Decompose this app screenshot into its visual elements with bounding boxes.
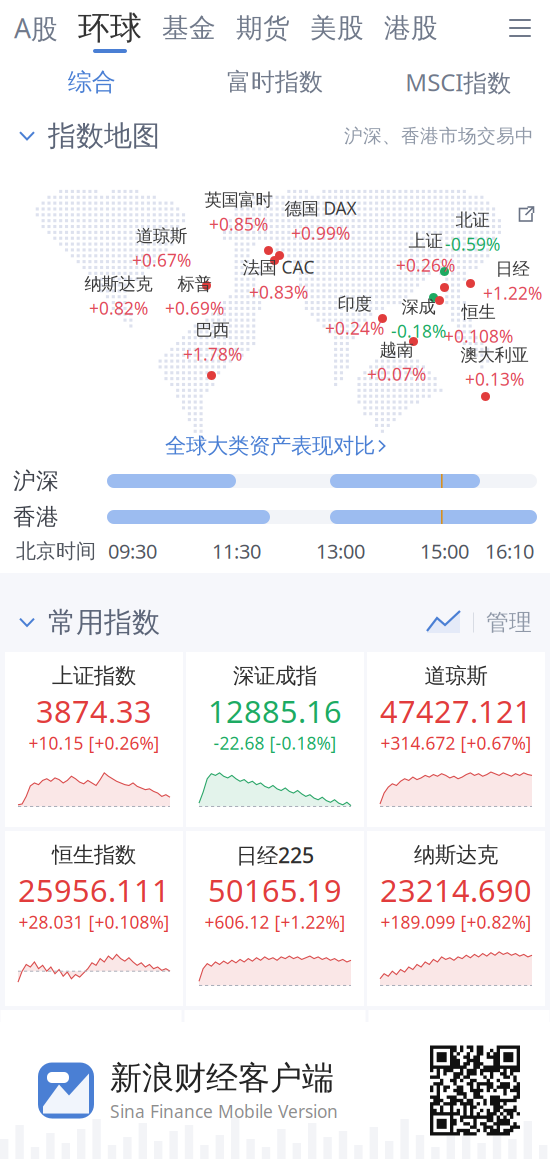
- staticText: +606.12 [+1.22%]: [204, 910, 345, 933]
- staticText: 上证: [408, 230, 442, 252]
- staticText: 50165.19: [208, 870, 342, 910]
- staticText: 美股: [310, 12, 364, 44]
- staticText: 英国富时: [204, 189, 272, 211]
- button[interactable]: MSCI指数: [367, 56, 550, 108]
- staticText: 25956.111: [18, 870, 170, 910]
- button[interactable]: 上证指数: [5, 652, 183, 827]
- staticText: 11:30: [212, 538, 261, 564]
- staticText: +0.07%: [367, 363, 426, 386]
- button[interactable]: Share: [506, 194, 546, 234]
- staticText: +0.83%: [249, 280, 308, 303]
- staticText: +28.031 [+0.108%]: [18, 910, 169, 933]
- staticText: 3874.33: [36, 691, 152, 731]
- button[interactable]: 恒生指数: [5, 831, 183, 1006]
- staticText: 全球大类资产表现对比: [165, 433, 375, 459]
- staticText: 指数地图: [48, 119, 160, 153]
- staticText: 印度: [337, 293, 371, 315]
- staticText: 道琼斯: [424, 663, 487, 689]
- staticText: 16:10: [485, 538, 534, 564]
- staticText: 道琼斯: [136, 225, 187, 247]
- button[interactable]: 综合: [0, 56, 183, 108]
- button[interactable]: 日经225: [186, 831, 364, 1006]
- button[interactable]: 纳斯达克: [367, 831, 545, 1006]
- staticText: 12885.16: [208, 691, 342, 731]
- button[interactable]: 期货: [236, 0, 290, 56]
- staticText: 日经: [495, 258, 529, 280]
- staticText: A股: [14, 10, 58, 46]
- staticText: 纳斯达克: [84, 273, 152, 295]
- staticText: 越南: [379, 339, 413, 361]
- button[interactable]: Chart view: [427, 611, 461, 634]
- button[interactable]: A股: [14, 0, 58, 56]
- staticText: +0.108%: [444, 325, 513, 348]
- staticText: +189.099 [+0.82%]: [380, 910, 531, 933]
- staticText: 纳斯达克: [414, 842, 498, 868]
- staticText: 13:00: [316, 538, 365, 564]
- staticText: 综合: [68, 67, 116, 97]
- staticText: 沪深: [13, 467, 59, 495]
- staticText: 常用指数: [48, 605, 160, 640]
- button[interactable]: 美股: [310, 0, 364, 56]
- staticText: 沪深、香港市场交易中: [344, 124, 534, 147]
- staticText: 上证指数: [52, 663, 136, 689]
- staticText: +0.67%: [132, 249, 191, 272]
- staticText: MSCI指数: [405, 66, 511, 98]
- staticText: +0.82%: [89, 297, 148, 320]
- staticText: 标普: [177, 273, 211, 295]
- button[interactable]: 港股: [384, 0, 438, 56]
- button[interactable]: 环球: [78, 0, 142, 56]
- staticText: 日经225: [236, 841, 314, 869]
- staticText: 富时指数: [227, 67, 323, 97]
- staticText: +0.69%: [165, 297, 224, 320]
- button[interactable]: 基金: [162, 0, 216, 56]
- staticText: -0.59%: [445, 233, 500, 256]
- staticText: 德国 DAX: [284, 196, 356, 219]
- staticText: +0.24%: [325, 317, 384, 340]
- staticText: +1.22%: [483, 282, 542, 305]
- button[interactable]: 深证成指: [186, 652, 364, 827]
- button[interactable]: Menu: [500, 0, 540, 56]
- staticText: Sina Finance Mobile Version: [110, 1100, 338, 1123]
- staticText: 恒生指数: [52, 842, 136, 868]
- staticText: 香港: [13, 503, 59, 531]
- staticText: 23214.690: [380, 870, 532, 910]
- staticText: +1.78%: [183, 343, 242, 366]
- staticText: +0.85%: [209, 213, 268, 236]
- staticText: +0.13%: [465, 368, 524, 391]
- button[interactable]: 管理: [486, 609, 532, 636]
- staticText: 澳大利亚: [460, 344, 528, 366]
- staticText: 环球: [78, 8, 142, 48]
- staticText: +10.15 [+0.26%]: [28, 731, 159, 754]
- staticText: 基金: [162, 12, 216, 44]
- staticText: 期货: [236, 12, 290, 44]
- staticText: 15:00: [420, 538, 469, 564]
- staticText: 47427.121: [380, 691, 532, 731]
- staticText: 管理: [486, 609, 532, 636]
- staticText: +0.99%: [291, 221, 350, 244]
- staticText: -22.68 [-0.18%]: [213, 731, 336, 754]
- staticText: 巴西: [195, 319, 229, 341]
- staticText: 港股: [384, 12, 438, 44]
- button[interactable]: 道琼斯: [367, 652, 545, 827]
- staticText: +314.672 [+0.67%]: [380, 731, 531, 754]
- button[interactable]: 全球大类资产表现对比: [0, 429, 550, 463]
- staticText: 新浪财经客户端: [110, 1058, 334, 1098]
- staticText: 北证: [455, 209, 489, 231]
- staticText: 法国 CAC: [242, 255, 314, 278]
- staticText: 北京时间: [16, 539, 96, 563]
- staticText: 09:30: [108, 538, 157, 564]
- button[interactable]: 富时指数: [183, 56, 367, 108]
- staticText: 深成: [401, 296, 435, 318]
- staticText: 深证成指: [233, 663, 317, 689]
- staticText: 恒生: [461, 301, 495, 323]
- staticText: -0.18%: [391, 320, 446, 343]
- staticText: +0.26%: [396, 254, 455, 277]
